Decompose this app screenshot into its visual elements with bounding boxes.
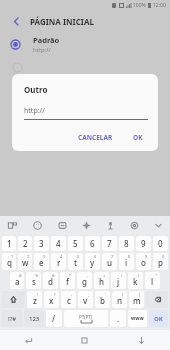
button[interactable]: Back: [113, 330, 170, 350]
button[interactable]: -: [77, 272, 92, 289]
staticText: OK: [133, 133, 143, 142]
button[interactable]: 1: [2, 236, 16, 251]
button[interactable]: 7: [102, 253, 117, 270]
button[interactable]: #: [10, 272, 24, 289]
button[interactable]: www: [128, 310, 147, 327]
button[interactable]: Backspace: [146, 291, 168, 308]
button[interactable]: 8: [119, 236, 134, 251]
button[interactable]: /: [46, 310, 62, 327]
staticText: 5: [73, 238, 78, 249]
staticText: 6: [94, 254, 97, 259]
button[interactable]: Clipboard: [50, 216, 74, 235]
button[interactable]: *: [60, 272, 75, 289]
button[interactable]: 3: [34, 253, 49, 270]
button[interactable]: 2: [18, 236, 32, 251]
button[interactable]: ): [128, 272, 143, 289]
staticText: [: [122, 292, 124, 297]
button[interactable]: .: [110, 310, 126, 327]
button[interactable]: OK: [149, 310, 168, 327]
button[interactable]: Home: [56, 330, 113, 350]
button[interactable]: 6: [85, 236, 100, 251]
button[interactable]: :: [61, 291, 76, 308]
button[interactable]: %: [26, 272, 41, 289]
staticText: (: [121, 273, 123, 278]
button[interactable]: !: [27, 291, 42, 308]
staticText: g: [82, 276, 87, 287]
button[interactable]: !?#: [2, 310, 22, 327]
staticText: ?: [54, 292, 56, 297]
button[interactable]: 9: [136, 236, 151, 251]
button[interactable]: Shift: [2, 291, 25, 308]
staticText: 9: [141, 238, 146, 249]
staticText: ): [138, 273, 140, 278]
staticText: 123: [29, 315, 40, 323]
button[interactable]: Collapse: [146, 216, 170, 235]
staticText: z: [33, 295, 37, 306]
staticText: h: [99, 276, 105, 287]
button[interactable]: ;: [78, 291, 93, 308]
button[interactable]: 1: [2, 253, 16, 270]
button[interactable]: CANCELAR: [73, 130, 118, 145]
staticText: 0: [162, 254, 165, 259]
staticText: y: [90, 257, 95, 268]
button[interactable]: &: [43, 272, 58, 289]
staticText: ;: [88, 292, 90, 297]
staticText: 4: [56, 238, 61, 249]
button[interactable]: 2: [18, 253, 32, 270]
staticText: x: [49, 295, 54, 306]
staticText: 2: [27, 254, 30, 259]
staticText: !: [37, 292, 39, 297]
button[interactable]: +: [94, 272, 109, 289]
button[interactable]: Padrão: [0, 31, 170, 57]
staticText: http://: [33, 46, 51, 54]
button[interactable]: ?: [44, 291, 59, 308]
staticText: 1: [7, 238, 12, 249]
staticText: 3: [43, 254, 46, 259]
staticText: www: [131, 315, 144, 322]
button[interactable]: 6: [85, 253, 100, 270]
staticText: n: [117, 295, 123, 306]
staticText: 5: [77, 254, 80, 259]
staticText: r: [57, 257, 61, 268]
button[interactable]: ]: [129, 291, 144, 308]
staticText: ': [105, 292, 106, 297]
staticText: u: [107, 257, 113, 268]
button[interactable]: 8: [119, 253, 134, 270]
staticText: 6: [90, 238, 95, 249]
button[interactable]: 0: [153, 236, 168, 251]
button[interactable]: OK: [128, 130, 148, 145]
staticText: k: [133, 276, 138, 287]
staticText: 1: [11, 254, 14, 259]
button[interactable]: ': [95, 291, 110, 308]
button[interactable]: Voice input: [98, 216, 122, 235]
staticText: a: [15, 276, 20, 287]
button[interactable]: Recents: [0, 330, 56, 350]
staticText: .: [117, 313, 120, 324]
button[interactable]: 0: [153, 253, 168, 270]
button[interactable]: PT(PT): [64, 310, 108, 327]
staticText: PT(PT): [79, 314, 93, 320]
button[interactable]: ": [145, 272, 160, 289]
button[interactable]: Settings: [122, 216, 146, 235]
staticText: 7: [111, 254, 114, 259]
button[interactable]: 4: [51, 253, 66, 270]
button[interactable]: Emoji: [25, 216, 50, 235]
button[interactable]: 5: [68, 253, 83, 270]
staticText: Outro: [24, 84, 48, 95]
staticText: 8: [128, 254, 131, 259]
button[interactable]: Move: [74, 216, 98, 235]
staticText: e: [39, 257, 44, 268]
button[interactable]: [: [112, 291, 127, 308]
button[interactable]: Back: [8, 13, 24, 29]
button[interactable]: (: [111, 272, 126, 289]
button[interactable]: 9: [136, 253, 151, 270]
button[interactable]: 123: [24, 310, 44, 327]
button[interactable]: 3: [34, 236, 49, 251]
button[interactable]: Keyboard layout: [0, 216, 25, 235]
button[interactable]: 4: [51, 236, 66, 251]
staticText: &: [52, 273, 55, 278]
staticText: j: [117, 276, 120, 287]
staticText: %: [35, 273, 39, 278]
button[interactable]: 7: [102, 236, 117, 251]
button[interactable]: 5: [68, 236, 83, 251]
